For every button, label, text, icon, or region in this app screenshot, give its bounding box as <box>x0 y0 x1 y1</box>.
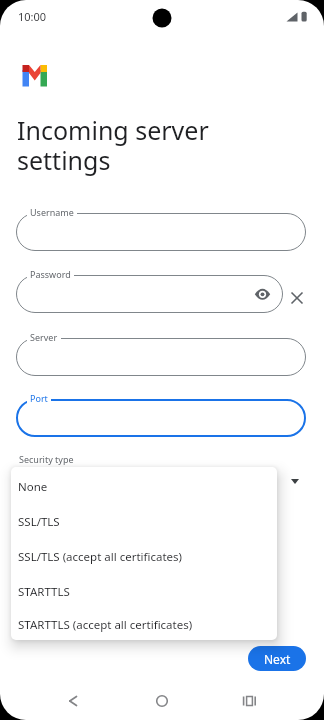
staticText: Username <box>30 206 74 218</box>
staticText: None <box>18 479 48 495</box>
staticText: STARTTLS (accept all certificates) <box>18 617 193 633</box>
button[interactable] <box>16 275 283 313</box>
button[interactable]: None <box>11 469 277 504</box>
staticText: SSL/TLS <box>18 514 60 530</box>
staticText: Password <box>30 268 71 280</box>
button[interactable] <box>250 282 275 307</box>
staticText: Next <box>264 651 291 667</box>
staticText: STARTTLS <box>18 584 70 600</box>
button[interactable] <box>290 291 304 305</box>
staticText: Port <box>30 392 48 404</box>
staticText: Security type <box>19 453 74 465</box>
button[interactable]: STARTTLS (accept all certificates) <box>11 609 277 640</box>
button[interactable] <box>16 213 306 251</box>
staticText: Incoming server settings <box>17 113 209 178</box>
staticText: Server <box>30 331 58 343</box>
button[interactable] <box>16 338 306 376</box>
button[interactable]: SSL/TLS (accept all certificates) <box>11 539 277 574</box>
button[interactable] <box>225 677 273 720</box>
button[interactable] <box>138 677 186 720</box>
button[interactable]: STARTTLS <box>11 574 277 609</box>
staticText: 10:00 <box>18 9 47 24</box>
staticText: SSL/TLS (accept all certificates) <box>18 549 183 565</box>
button[interactable] <box>16 399 306 437</box>
button[interactable]: Next <box>248 646 306 671</box>
button[interactable]: SSL/TLS <box>11 504 277 539</box>
button[interactable] <box>49 677 97 720</box>
